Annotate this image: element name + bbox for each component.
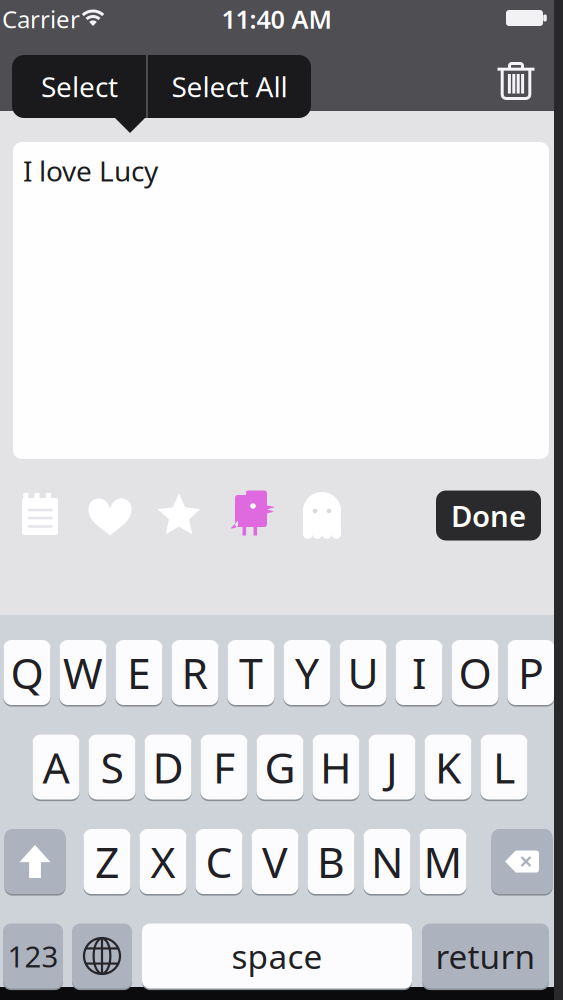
staticText: L (493, 739, 515, 795)
button[interactable]: H (312, 733, 359, 800)
staticText: J (386, 739, 398, 795)
staticText: 123 (7, 936, 58, 975)
button[interactable]: space (142, 922, 412, 989)
staticText: I (412, 644, 426, 701)
button[interactable]: Z (83, 828, 130, 895)
button[interactable]: Ghost (303, 492, 341, 536)
button[interactable]: C (195, 828, 242, 895)
button[interactable]: N (363, 828, 410, 895)
button[interactable]: P (507, 639, 554, 706)
button[interactable]: O (451, 639, 498, 706)
staticText: C (205, 833, 232, 890)
staticText: Q (10, 644, 43, 701)
staticText: E (127, 644, 151, 701)
staticText: Y (295, 644, 319, 701)
button[interactable]: S (88, 733, 135, 800)
button[interactable]: Notes (21, 493, 59, 537)
button[interactable]: Next keyboard (72, 922, 132, 989)
button[interactable]: Shift (4, 828, 65, 895)
staticText: K (435, 739, 461, 795)
button[interactable]: Select All (148, 55, 310, 118)
button[interactable]: K (424, 733, 471, 800)
button[interactable]: G (256, 733, 303, 800)
button[interactable]: Backspace (491, 828, 552, 895)
button[interactable]: Q (3, 639, 50, 706)
button[interactable]: E (115, 639, 162, 706)
staticText: N (371, 833, 403, 890)
button[interactable]: D (144, 733, 191, 800)
staticText: D (152, 739, 183, 795)
button[interactable]: B (307, 828, 354, 895)
button[interactable]: U (339, 639, 386, 706)
staticText: R (181, 644, 208, 701)
staticText: Done (451, 496, 526, 535)
staticText: O (458, 644, 491, 701)
button[interactable]: V (251, 828, 298, 895)
button[interactable]: A (32, 733, 79, 800)
button[interactable]: Monster (230, 490, 276, 536)
button[interactable]: R (171, 639, 218, 706)
button[interactable]: W (59, 639, 106, 706)
staticText: I love Lucy (23, 152, 158, 189)
staticText: A (42, 739, 69, 795)
button[interactable]: 123 (3, 922, 63, 989)
button[interactable]: Star (155, 492, 202, 537)
button[interactable]: J (368, 733, 415, 800)
staticText: W (63, 644, 103, 701)
button[interactable]: Delete (496, 59, 536, 103)
staticText: B (317, 833, 345, 890)
staticText: Carrier (2, 3, 80, 35)
staticText: S (100, 739, 123, 795)
staticText: Z (95, 833, 119, 890)
button[interactable]: Select (13, 55, 146, 118)
button[interactable]: Done (436, 490, 541, 540)
staticText: Select (41, 68, 118, 105)
button[interactable]: X (139, 828, 186, 895)
button[interactable]: L (480, 733, 527, 800)
staticText: T (239, 644, 263, 701)
staticText: V (262, 833, 288, 890)
button[interactable]: I (395, 639, 442, 706)
button[interactable]: T (227, 639, 274, 706)
staticText: F (213, 739, 235, 795)
staticText: space (231, 934, 322, 978)
staticText: U (347, 644, 378, 701)
button[interactable]: return (422, 922, 549, 989)
staticText: return (435, 934, 535, 978)
staticText: Select All (171, 68, 287, 105)
staticText: G (264, 739, 295, 795)
staticText: H (320, 739, 352, 795)
staticText: M (423, 833, 462, 890)
button[interactable]: Heart (88, 498, 131, 535)
button[interactable]: Y (283, 639, 330, 706)
staticText: P (518, 644, 544, 701)
staticText: X (150, 833, 175, 890)
staticText: 11:40 AM (221, 2, 332, 36)
button[interactable]: F (200, 733, 247, 800)
button[interactable]: M (419, 828, 466, 895)
